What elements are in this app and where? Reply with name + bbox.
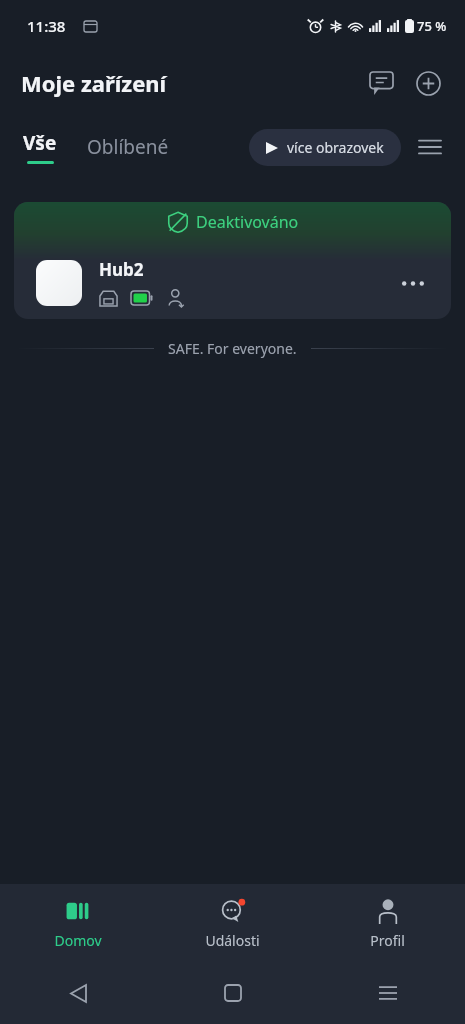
- staticText: Profil: [370, 931, 405, 950]
- button[interactable]: Recent apps: [367, 972, 409, 1014]
- button[interactable]: More options: [393, 263, 433, 303]
- staticText: více obrazovek: [287, 138, 384, 157]
- button[interactable]: Domov: [0, 884, 155, 962]
- button[interactable]: Profil: [310, 884, 465, 962]
- staticText: Vše: [23, 130, 57, 156]
- staticText: Události: [205, 931, 260, 950]
- staticText: SAFE. For everyone.: [168, 339, 297, 358]
- button[interactable]: Oblíbené: [85, 130, 171, 164]
- staticText: Deaktivováno: [196, 211, 299, 233]
- button[interactable]: Home: [212, 972, 254, 1014]
- staticText: Moje zařízení: [21, 68, 167, 98]
- staticText: Domov: [54, 931, 102, 950]
- button[interactable]: více obrazovek: [249, 129, 401, 166]
- button[interactable]: Add device: [407, 62, 449, 104]
- staticText: Oblíbené: [87, 134, 169, 160]
- staticText: 11:38: [27, 16, 66, 36]
- button[interactable]: Messages: [361, 63, 401, 103]
- button[interactable]: Deaktivováno: [14, 202, 451, 319]
- staticText: Hub2: [99, 258, 144, 281]
- staticText: 75 %: [417, 17, 447, 35]
- button[interactable]: Vše: [21, 130, 59, 164]
- button[interactable]: Události: [155, 884, 310, 962]
- button[interactable]: Menu: [409, 126, 451, 168]
- button[interactable]: Back: [57, 972, 99, 1014]
